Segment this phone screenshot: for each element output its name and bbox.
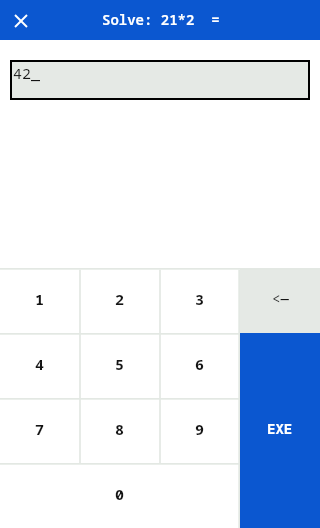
button[interactable]: Close xyxy=(0,0,42,40)
button[interactable]: 4 xyxy=(0,333,80,398)
button[interactable]: Backspace xyxy=(240,268,320,333)
staticText: 6 xyxy=(195,354,205,374)
staticText: <— xyxy=(272,289,289,308)
staticText: Solve: 21*2 = xyxy=(102,10,220,29)
button[interactable]: 1 xyxy=(0,268,80,333)
button[interactable]: 9 xyxy=(160,398,240,463)
staticText: 8 xyxy=(115,419,125,439)
button[interactable]: 2 xyxy=(80,268,160,333)
staticText: EXE xyxy=(267,419,293,438)
staticText: 42_ xyxy=(13,63,41,83)
button[interactable]: 0 xyxy=(0,463,240,528)
button[interactable]: EXE xyxy=(240,333,320,528)
button[interactable]: 3 xyxy=(160,268,240,333)
staticText: 0 xyxy=(115,484,125,504)
button[interactable]: 7 xyxy=(0,398,80,463)
button[interactable]: 5 xyxy=(80,333,160,398)
staticText: 3 xyxy=(195,289,205,309)
staticText: 5 xyxy=(115,354,125,374)
button[interactable]: 6 xyxy=(160,333,240,398)
staticText: 1 xyxy=(35,289,45,309)
button[interactable]: 8 xyxy=(80,398,160,463)
staticText: 7 xyxy=(35,419,45,439)
staticText: 2 xyxy=(115,289,125,309)
staticText: 9 xyxy=(195,419,205,439)
staticText: 4 xyxy=(35,354,45,374)
